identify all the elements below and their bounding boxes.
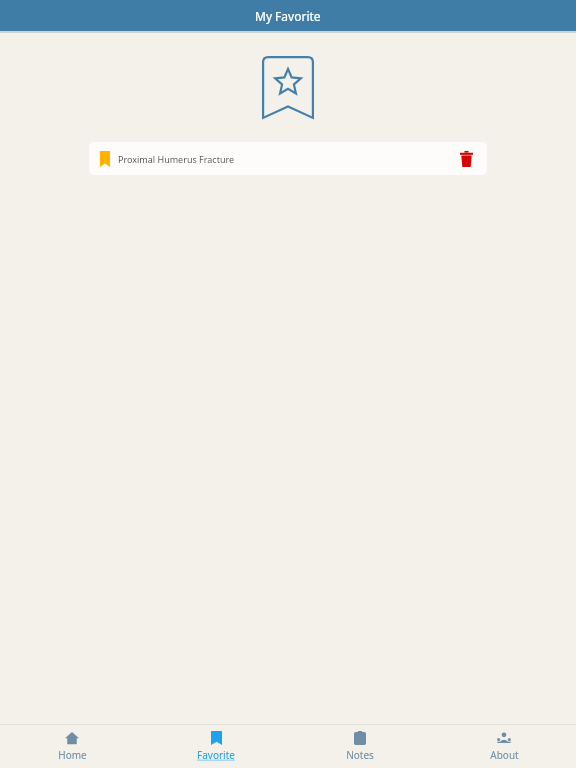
staticText: My Favorite <box>255 8 321 24</box>
button[interactable]: Delete <box>456 149 476 169</box>
staticText: Home <box>58 748 87 762</box>
staticText: Favorite <box>197 748 235 762</box>
staticText: Proximal Humerus Fracture <box>118 153 456 165</box>
button[interactable]: Home <box>0 725 144 768</box>
button[interactable]: Proximal Humerus Fracture <box>89 142 487 175</box>
button[interactable]: Notes <box>288 725 432 768</box>
staticText: Notes <box>346 748 374 762</box>
button[interactable]: About <box>432 725 576 768</box>
button[interactable]: Favorite <box>144 725 288 768</box>
staticText: About <box>490 748 519 762</box>
